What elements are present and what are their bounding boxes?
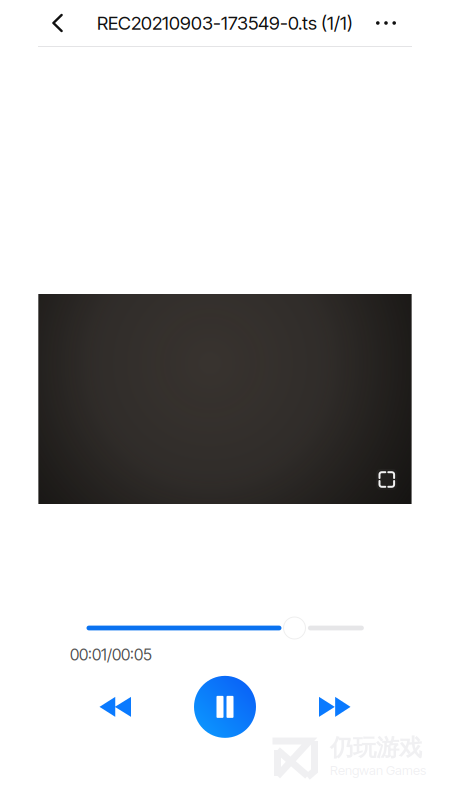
button[interactable]: More options	[358, 0, 450, 47]
button[interactable]: Rewind	[85, 683, 145, 731]
button[interactable]: Fast forward	[305, 683, 364, 731]
button[interactable]: Full screen	[362, 455, 411, 504]
staticText: 仍玩游戏	[330, 733, 422, 762]
staticText: REC20210903-173549-0.ts (1/1)	[97, 12, 353, 34]
staticText: 00:01/00:05	[70, 645, 152, 664]
staticText: Rengwan Games	[330, 762, 426, 778]
button[interactable]: Back	[0, 1, 80, 45]
button[interactable]: Pause	[194, 676, 256, 738]
